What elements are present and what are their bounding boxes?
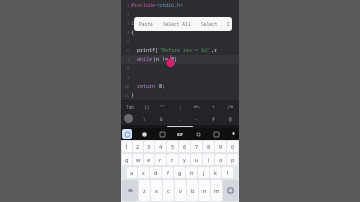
button[interactable]: Color picker [124, 114, 133, 123]
staticText: s [142, 169, 145, 177]
staticText: @ [229, 116, 232, 122]
staticText: + [212, 104, 215, 110]
staticText: k [214, 169, 217, 177]
staticText: t [171, 156, 174, 164]
button[interactable]: Select [196, 17, 223, 31]
button[interactable]: Tab [124, 101, 136, 112]
button[interactable]: x [151, 180, 162, 201]
button[interactable]: ; [174, 101, 186, 112]
button[interactable]: n [199, 180, 210, 201]
button[interactable]: Emoji keyboard [122, 129, 132, 139]
button[interactable]: a [127, 167, 137, 178]
staticText: 6 [183, 143, 187, 151]
button[interactable]: w [133, 154, 143, 165]
button[interactable]: Select All [158, 17, 196, 31]
staticText: 0; [156, 83, 166, 90]
staticText: 11 [124, 93, 130, 99]
button[interactable]: 7 [191, 141, 202, 152]
button[interactable]: b [187, 180, 198, 201]
staticText: c [167, 187, 170, 195]
staticText: q [125, 156, 129, 164]
button[interactable]: 5 [167, 141, 178, 152]
staticText: 1 [127, 3, 130, 9]
button[interactable]: z [139, 180, 150, 201]
staticText: 2 [127, 12, 130, 18]
button[interactable]: # [207, 113, 219, 124]
button[interactable]: c [163, 180, 174, 201]
staticText: Tab [126, 104, 134, 110]
button[interactable]: Clipboard [211, 129, 221, 139]
button[interactable]: l [222, 167, 233, 178]
button[interactable]: o [215, 154, 226, 165]
button[interactable]: 9 [215, 141, 226, 152]
button[interactable]: Backspace [223, 180, 238, 201]
button[interactable]: q [122, 154, 132, 165]
button[interactable]: Redo [224, 101, 236, 112]
button[interactable]: {} [141, 101, 153, 112]
staticText: d [154, 169, 158, 177]
button[interactable]: s [138, 167, 149, 178]
staticText: m [214, 187, 220, 195]
button[interactable]: \ [138, 113, 150, 124]
staticText: ,r [211, 47, 218, 54]
staticText: #include [131, 2, 156, 9]
staticText: 1 [125, 143, 129, 151]
staticText: 5 [171, 143, 175, 151]
button[interactable]: d [150, 167, 161, 178]
button[interactable]: Shift [122, 180, 138, 201]
staticText: } [131, 92, 135, 99]
staticText: n [203, 187, 207, 195]
button[interactable]: Settings [193, 129, 203, 139]
button[interactable]: , [173, 113, 185, 124]
button[interactable]: t [167, 154, 178, 165]
staticText: , [178, 116, 181, 122]
button[interactable]: f [162, 167, 173, 178]
button[interactable]: Undo [191, 101, 203, 112]
button[interactable]: @ [224, 113, 236, 124]
button[interactable]: Voice input [228, 129, 238, 139]
button[interactable]: e [144, 154, 154, 165]
button[interactable]: 6 [179, 141, 190, 152]
staticText: GIF [177, 132, 184, 137]
staticText: a [130, 169, 134, 177]
staticText: 4 [127, 30, 130, 36]
button[interactable]: 4 [155, 141, 166, 152]
staticText: i [208, 156, 210, 164]
staticText: - [195, 116, 198, 122]
button[interactable]: k [210, 167, 221, 178]
staticText: \ [143, 116, 146, 122]
button[interactable]: 0 [227, 141, 238, 152]
button[interactable]: i [203, 154, 214, 165]
button[interactable]: Emoji [139, 129, 149, 139]
button[interactable]: v [175, 180, 186, 201]
button[interactable]: j [198, 167, 209, 178]
button[interactable]: "" [157, 101, 169, 112]
staticText: 4 [159, 143, 163, 151]
button[interactable]: - [190, 113, 202, 124]
staticText: 5 [127, 39, 130, 45]
staticText: f [167, 169, 169, 177]
staticText: { [131, 29, 135, 36]
button[interactable]: p [227, 154, 238, 165]
button[interactable]: 1 [122, 141, 132, 152]
button[interactable]: y [179, 154, 190, 165]
button[interactable]: + [207, 101, 219, 112]
button[interactable]: 3 [144, 141, 154, 152]
button[interactable]: g [174, 167, 185, 178]
staticText: <stdio.h> [156, 2, 184, 9]
button[interactable]: h [186, 167, 197, 178]
button[interactable]: & [155, 113, 167, 124]
button[interactable]: u [191, 154, 202, 165]
button[interactable]: GIF [174, 129, 186, 139]
staticText: 8 [127, 66, 130, 72]
staticText: (n != 0) [153, 56, 178, 63]
staticText: ; [179, 104, 182, 110]
button[interactable]: Paste [134, 17, 158, 31]
button[interactable]: m [211, 180, 222, 201]
staticText: Select All [163, 21, 191, 27]
button[interactable]: 8 [203, 141, 214, 152]
button[interactable]: 2 [133, 141, 143, 152]
button[interactable]: r [155, 154, 166, 165]
button[interactable]: Stickers [157, 129, 167, 139]
button[interactable]: More options [223, 17, 232, 31]
